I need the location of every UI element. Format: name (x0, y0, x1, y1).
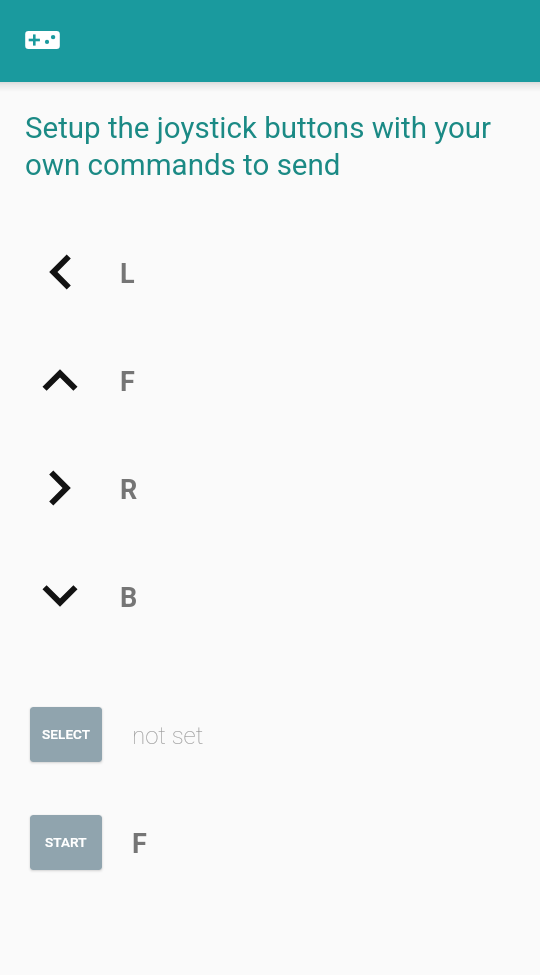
staticText: START (45, 834, 87, 850)
button[interactable]: L (0, 221, 540, 329)
staticText: R (120, 474, 138, 506)
staticText: Setup the joystick buttons with your own… (25, 111, 505, 182)
staticText: B (120, 582, 138, 614)
staticText: not set (132, 722, 204, 750)
staticText: F (132, 828, 147, 860)
button[interactable]: R (0, 437, 540, 545)
staticText: SELECT (42, 726, 91, 742)
staticText: F (120, 366, 135, 398)
button[interactable]: Gamepad (18, 24, 67, 56)
staticText: L (120, 258, 135, 290)
button[interactable]: SELECT (30, 707, 102, 762)
button[interactable]: B (0, 545, 540, 653)
button[interactable]: START (30, 815, 102, 870)
button[interactable]: F (0, 329, 540, 437)
